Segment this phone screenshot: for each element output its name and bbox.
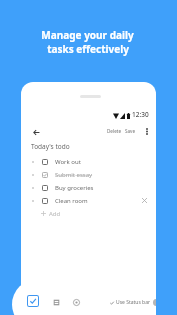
button[interactable]: More options xyxy=(142,127,151,136)
button[interactable]: Recent apps xyxy=(53,299,60,306)
staticText: Buy groceries xyxy=(55,184,94,192)
button[interactable]: Clean room xyxy=(21,194,156,207)
button[interactable]: Delete task xyxy=(140,196,149,205)
staticText: tasks effectively xyxy=(47,42,129,56)
staticText: Submit essay xyxy=(55,171,93,179)
staticText: Use Status bar xyxy=(116,299,151,306)
button[interactable]: Buy groceries xyxy=(21,181,156,194)
button[interactable]: Add xyxy=(21,207,156,220)
button[interactable]: Back xyxy=(30,126,42,138)
staticText: Today's todo xyxy=(31,142,70,151)
button[interactable]: Delete xyxy=(106,126,122,136)
button[interactable]: Submit essay xyxy=(21,168,156,181)
button[interactable]: Home xyxy=(73,299,80,306)
staticText: Manage your daily xyxy=(41,28,134,42)
button[interactable]: App icon xyxy=(27,295,39,307)
button[interactable]: Work out xyxy=(21,155,156,168)
staticText: Clean room xyxy=(55,197,88,205)
staticText: 12:30 xyxy=(132,110,149,119)
staticText: Add xyxy=(49,210,61,218)
button[interactable]: Use Status bar xyxy=(110,299,156,306)
button[interactable]: Save xyxy=(124,126,137,136)
staticText: Work out xyxy=(55,158,81,166)
